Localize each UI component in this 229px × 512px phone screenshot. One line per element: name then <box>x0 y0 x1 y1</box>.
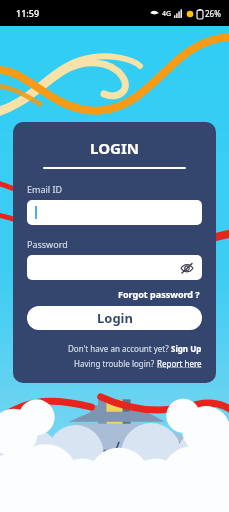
button[interactable]: Show password <box>27 255 202 280</box>
staticText: Don't have an account yet? <box>68 343 171 354</box>
staticText: 4G <box>162 9 172 19</box>
staticText: Password <box>27 238 68 250</box>
staticText: Sign Up <box>171 343 202 354</box>
staticText: Report here <box>157 358 202 369</box>
button[interactable]: Forgot password ? <box>116 286 202 302</box>
button[interactable]: Show password <box>180 261 194 275</box>
staticText: LOGIN <box>27 138 202 158</box>
button[interactable] <box>27 200 202 225</box>
staticText: Having trouble login? <box>74 358 157 369</box>
staticText: 11:59 <box>16 7 40 19</box>
button[interactable]: Having trouble login? <box>27 358 202 369</box>
staticText: Login <box>97 309 133 327</box>
staticText: Email ID <box>27 183 63 195</box>
staticText: 26% <box>205 8 221 19</box>
button[interactable]: Login <box>27 306 202 330</box>
button[interactable]: Don't have an account yet? <box>27 343 202 354</box>
